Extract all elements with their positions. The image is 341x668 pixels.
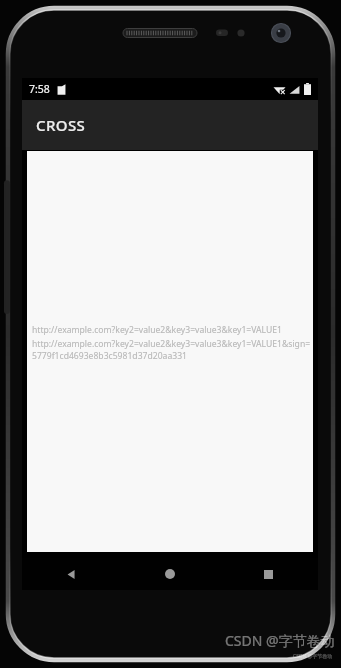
staticText: 7:58: [29, 82, 50, 96]
button[interactable]: Home: [120, 558, 219, 590]
staticText: http://example.com?key2=value2&key3=valu…: [32, 324, 282, 336]
staticText: http://example.com?key2=value2&key3=valu…: [32, 338, 311, 362]
button[interactable]: CROSS: [22, 100, 318, 150]
staticText: CROSS: [36, 115, 86, 135]
staticText: CSDN @字节卷动: [225, 631, 335, 650]
staticText: CSDN @字节卷动: [293, 653, 333, 660]
button[interactable]: Back: [22, 558, 120, 590]
button[interactable]: Recent apps: [219, 558, 318, 590]
